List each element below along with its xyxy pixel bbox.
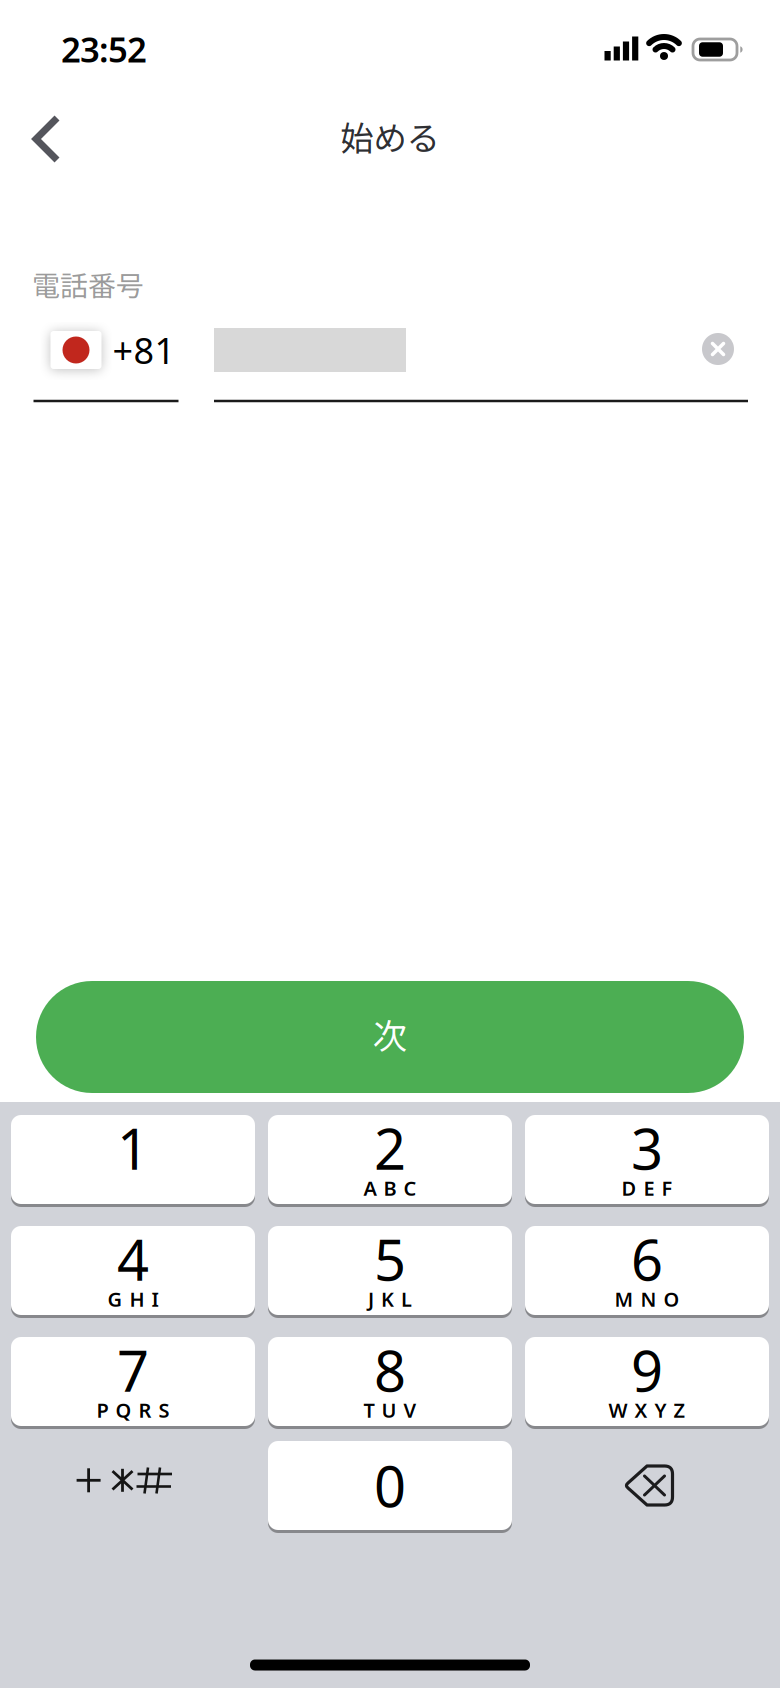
staticText: WXYZ xyxy=(608,1397,685,1423)
staticText: 5 xyxy=(374,1222,406,1296)
staticText: GHI xyxy=(107,1286,158,1312)
staticText: 1 xyxy=(117,1111,149,1185)
button[interactable]: 8 xyxy=(268,1337,512,1426)
staticText: 3 xyxy=(631,1111,663,1185)
staticText: PQRS xyxy=(96,1397,169,1423)
staticText: DEF xyxy=(621,1175,672,1201)
button[interactable]: Country code +81 xyxy=(0,239,780,414)
button[interactable]: 0 xyxy=(268,1441,512,1530)
button[interactable]: 5 xyxy=(268,1226,512,1315)
staticText: ABC xyxy=(363,1175,416,1201)
button[interactable]: Clear text xyxy=(702,333,734,365)
button[interactable]: Symbols xyxy=(11,1441,255,1530)
staticText: 次 xyxy=(372,1009,407,1059)
button[interactable]: 次 xyxy=(36,981,744,1093)
staticText: JKL xyxy=(368,1286,412,1312)
staticText: 23:52 xyxy=(61,26,147,72)
staticText: 7 xyxy=(117,1333,149,1407)
staticText: 電話番号 xyxy=(32,264,144,304)
staticText: 始める xyxy=(340,112,439,160)
staticText: +81 xyxy=(112,326,175,374)
button[interactable]: 9 xyxy=(525,1337,769,1426)
staticText: 9 xyxy=(631,1333,663,1407)
button[interactable]: 6 xyxy=(525,1226,769,1315)
button[interactable]: 7 xyxy=(11,1337,255,1426)
staticText: 2 xyxy=(374,1111,406,1185)
button[interactable]: 2 xyxy=(268,1115,512,1204)
button[interactable]: 3 xyxy=(525,1115,769,1204)
staticText: MNO xyxy=(614,1286,679,1312)
button[interactable]: 1 xyxy=(11,1115,255,1204)
button[interactable]: 4 xyxy=(11,1226,255,1315)
button[interactable]: Phone number xyxy=(214,328,748,372)
staticText: TUV xyxy=(363,1397,416,1423)
staticText: 8 xyxy=(374,1333,406,1407)
staticText: 6 xyxy=(631,1222,663,1296)
staticText: 0 xyxy=(374,1448,406,1523)
button[interactable]: Delete xyxy=(525,1441,769,1530)
staticText: 4 xyxy=(117,1222,149,1296)
button[interactable]: Back xyxy=(16,104,76,174)
